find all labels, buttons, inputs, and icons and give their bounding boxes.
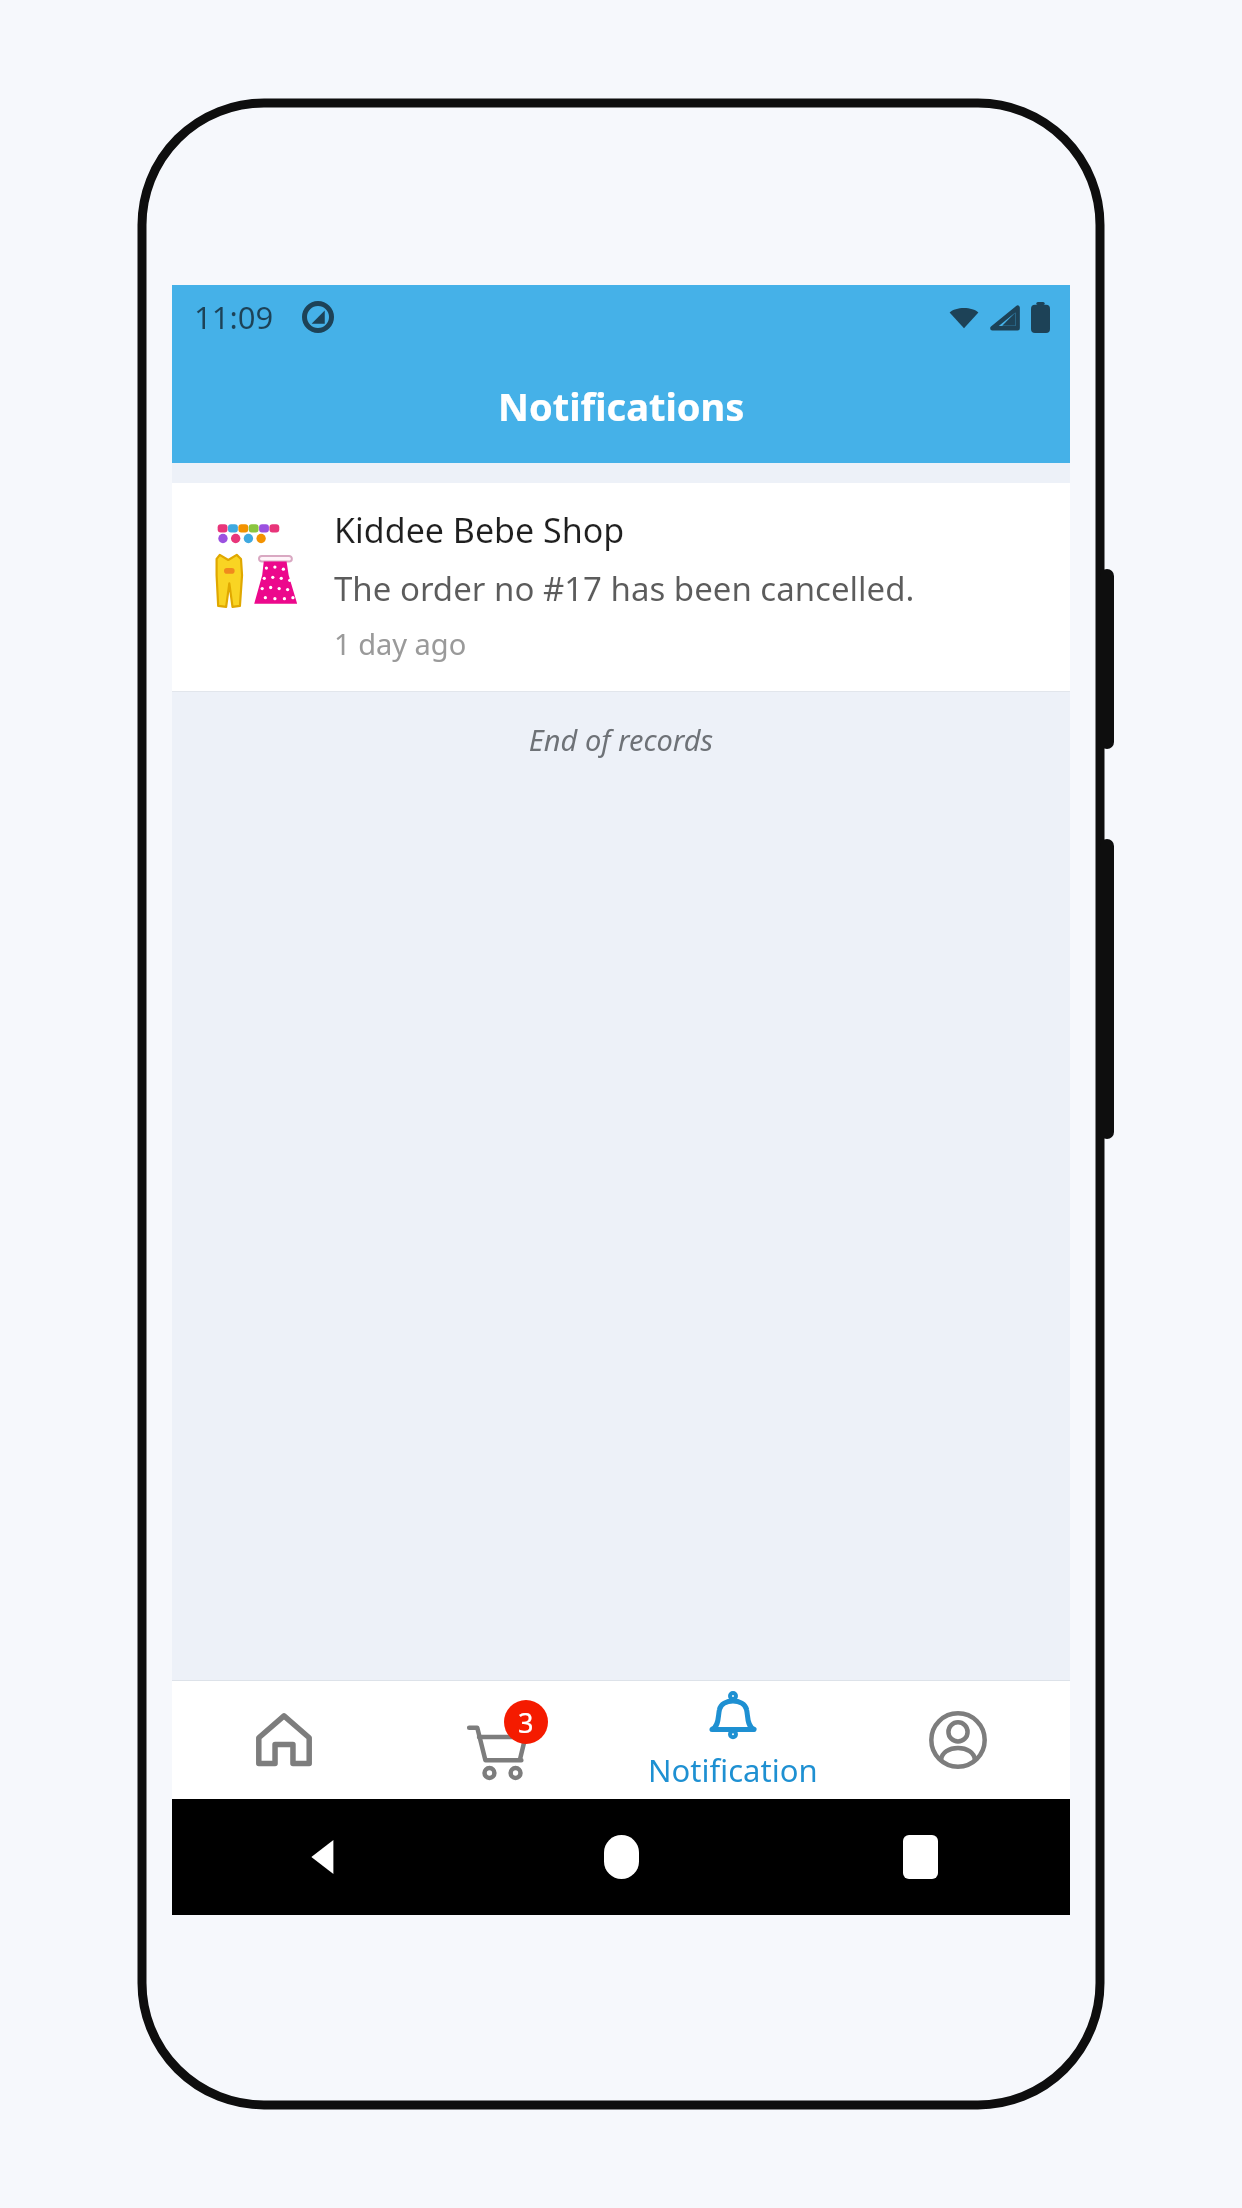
button[interactable]: Profile [845,1681,1070,1799]
staticText: Kiddee Bebe Shop [334,507,625,553]
staticText: 11:09 [194,296,274,338]
button[interactable]: Cart, 3 items [396,1681,620,1799]
button[interactable]: Home [604,1835,639,1879]
staticText: End of records [172,720,1070,759]
button[interactable]: Recents [903,1835,938,1879]
button[interactable]: Kiddee Bebe Shop [172,483,1070,691]
staticText: 1 day ago [334,624,467,663]
staticText: 3 [518,1704,534,1741]
button[interactable]: Notification [620,1681,845,1799]
staticText: Notifications [498,380,745,432]
staticText: Notification [648,1749,818,1791]
button[interactable]: Back [303,1838,341,1876]
staticText: The order no #17 has been cancelled. [334,566,915,611]
button[interactable]: Home [172,1681,396,1799]
